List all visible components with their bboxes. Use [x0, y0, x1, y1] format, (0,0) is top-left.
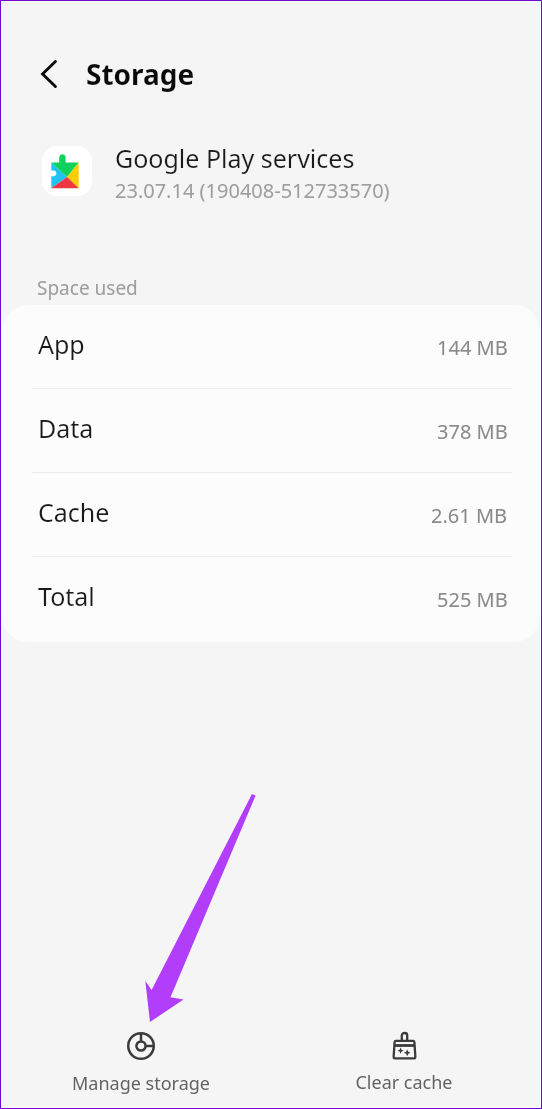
- staticText: Clear cache: [355, 1070, 453, 1095]
- staticText: Storage: [86, 55, 195, 93]
- staticText: Total: [38, 579, 95, 613]
- staticText: 23.07.14 (190408-512733570): [115, 177, 390, 204]
- staticText: Cache: [38, 495, 110, 529]
- staticText: 144 MB: [437, 334, 508, 361]
- staticText: Space used: [37, 275, 138, 301]
- staticText: App: [38, 327, 85, 361]
- staticText: Data: [38, 411, 94, 445]
- button[interactable]: App: [2, 305, 540, 389]
- button[interactable]: Total: [2, 557, 540, 641]
- button[interactable]: Cache: [2, 473, 540, 557]
- staticText: 378 MB: [437, 418, 508, 445]
- staticText: Manage storage: [72, 1071, 210, 1096]
- staticText: Google Play services: [115, 141, 355, 175]
- button[interactable]: Manage storage: [25, 999, 257, 1104]
- button[interactable]: Clear cache: [307, 999, 501, 1104]
- staticText: 525 MB: [437, 586, 508, 613]
- staticText: 2.61 MB: [431, 502, 508, 529]
- button[interactable]: Data: [2, 389, 540, 473]
- button[interactable]: Back: [28, 53, 70, 95]
- button[interactable]: Google Play services: [2, 130, 540, 208]
